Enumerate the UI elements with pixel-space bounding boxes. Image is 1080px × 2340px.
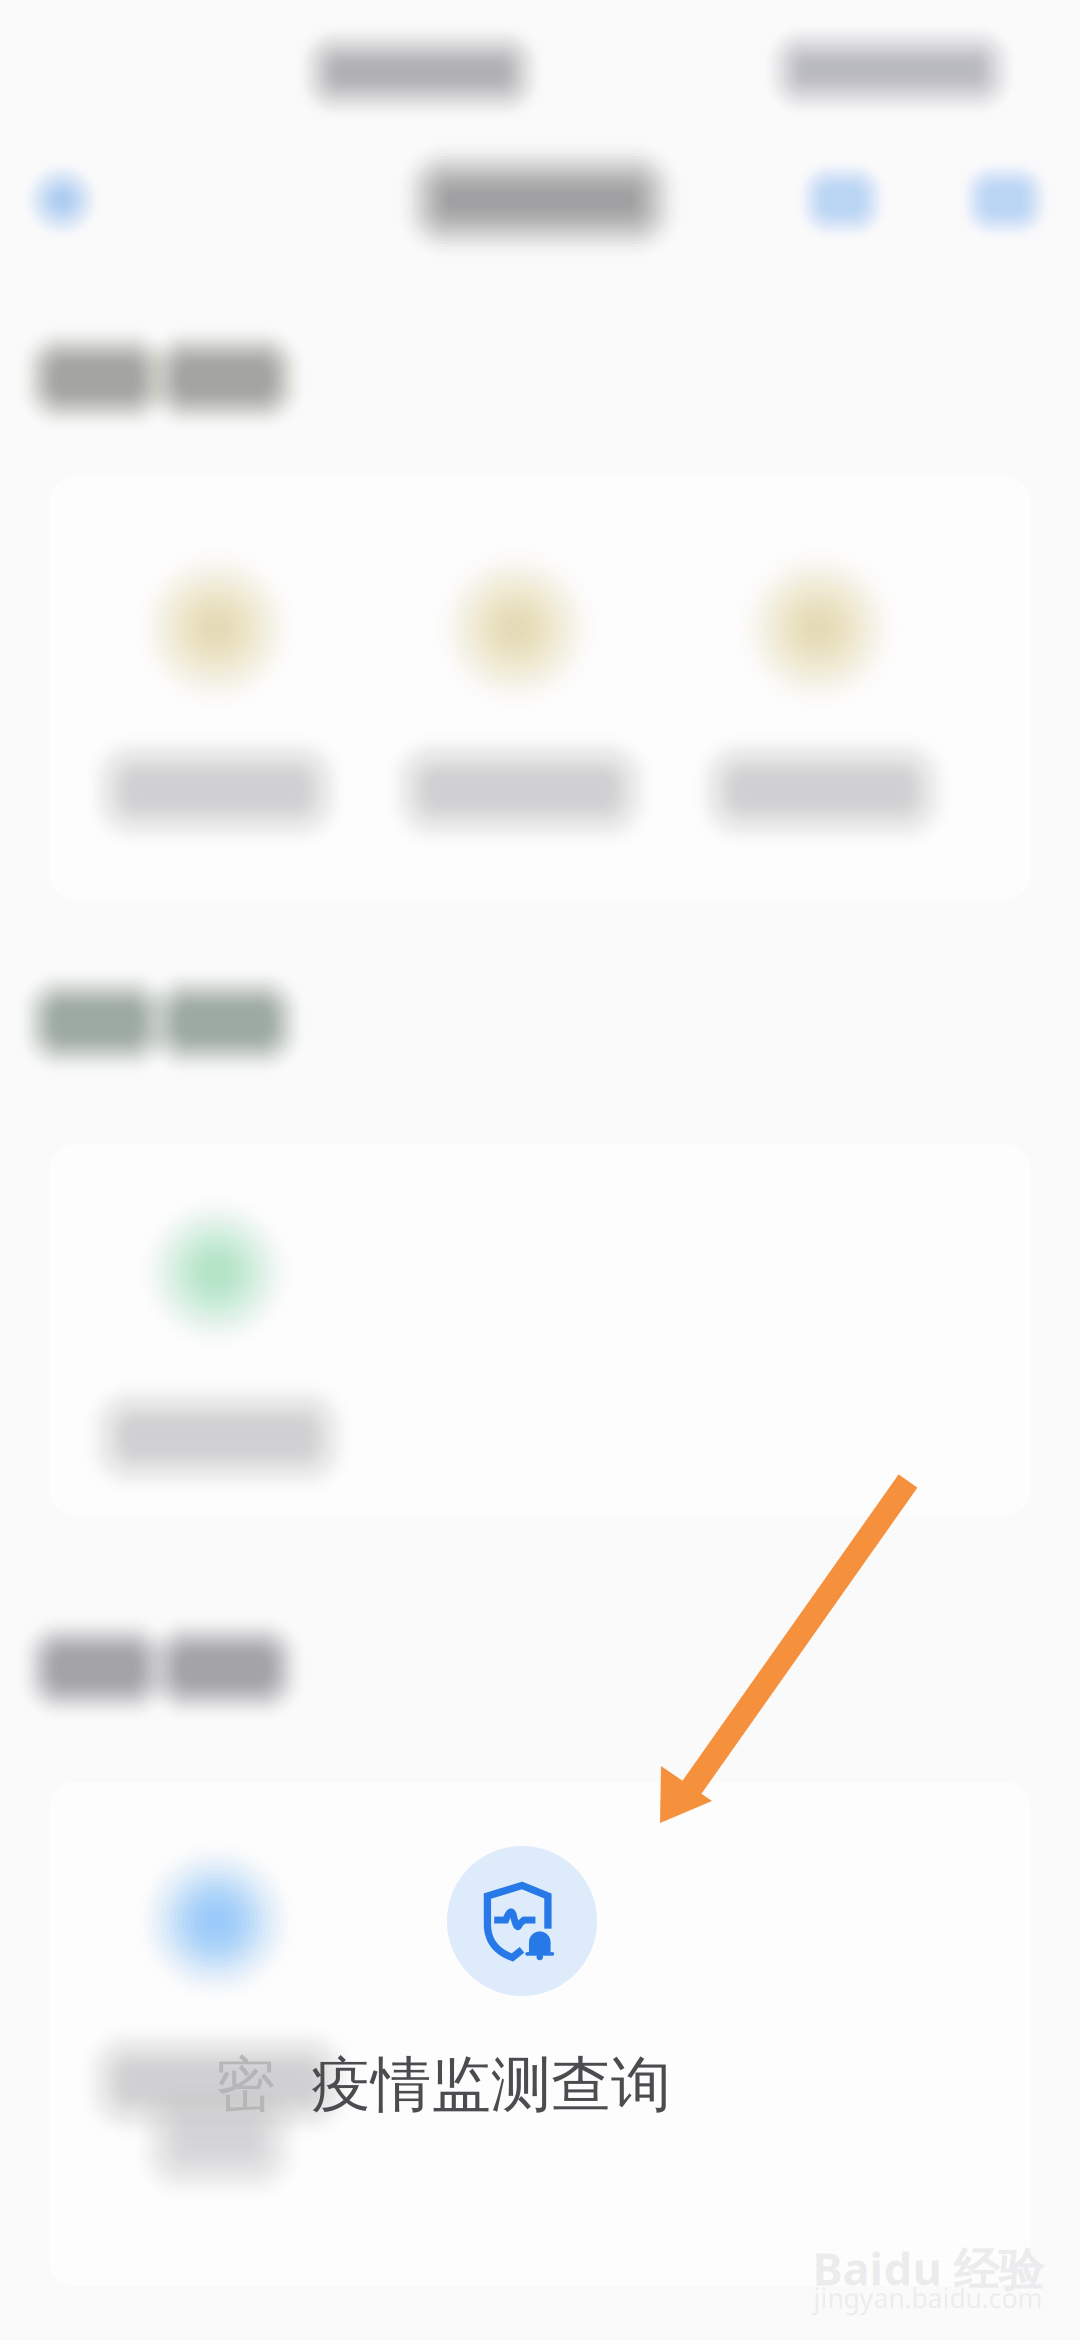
button[interactable]: More	[930, 120, 1080, 280]
staticText: 密	[215, 2048, 275, 2122]
staticText: 疫情监测查询	[311, 2048, 671, 2122]
button[interactable]: Back	[0, 120, 137, 280]
staticText: Baidu 经验	[812, 2238, 1043, 2298]
staticText: jingyan.baidu.com	[813, 2280, 1042, 2316]
button[interactable]: Search	[767, 120, 917, 280]
button[interactable]: 密	[0, 0, 1080, 2340]
